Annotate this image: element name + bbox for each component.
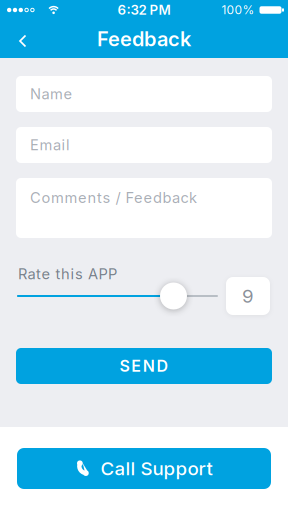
button[interactable]: Name xyxy=(16,76,272,112)
staticText: 9 xyxy=(242,285,254,307)
button[interactable]: Call Support xyxy=(17,448,271,489)
staticText: SEND xyxy=(120,357,168,375)
staticText: Email xyxy=(30,136,70,154)
staticText: Call Support xyxy=(100,457,212,479)
staticText: Rate this APP xyxy=(18,265,117,283)
staticText: 100% xyxy=(221,3,254,17)
button[interactable]: Email xyxy=(16,127,272,163)
button[interactable]: Comments / Feedback xyxy=(16,178,272,238)
staticText: Feedback xyxy=(97,27,191,51)
staticText: Name xyxy=(30,85,72,103)
button[interactable]: Back xyxy=(16,28,44,50)
button[interactable]: Rating slider xyxy=(160,282,187,309)
staticText: Comments / Feedback xyxy=(30,189,197,206)
button[interactable]: SEND xyxy=(16,348,272,384)
staticText: 6:32 PM xyxy=(117,2,170,18)
